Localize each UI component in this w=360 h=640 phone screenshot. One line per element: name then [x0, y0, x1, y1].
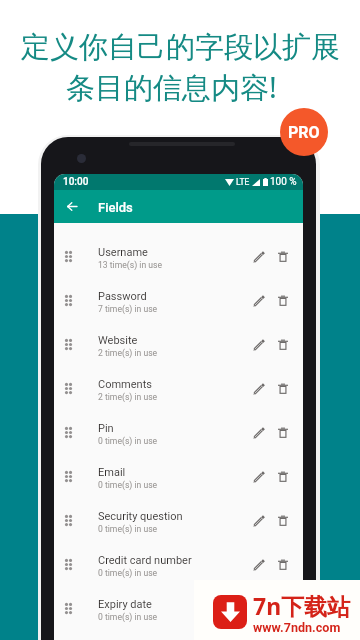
button[interactable]: Delete [271, 455, 294, 498]
staticText: 100 % [270, 176, 297, 188]
staticText: Username [98, 246, 148, 259]
button[interactable]: Security question [54, 498, 303, 542]
button[interactable]: Edit [247, 587, 271, 630]
staticText: Email [98, 466, 126, 479]
staticText: 2 time(s) in use [98, 392, 158, 402]
button[interactable]: Expiry date [54, 586, 303, 630]
button[interactable]: Edit [247, 411, 271, 454]
button[interactable]: Credit card number [54, 542, 303, 586]
staticText: Password [98, 290, 147, 303]
staticText: Comments [98, 378, 152, 391]
staticText: Security question [98, 510, 183, 523]
button[interactable]: Delete [271, 367, 294, 410]
button[interactable]: Edit [247, 279, 271, 322]
staticText: 0 time(s) in use [98, 524, 158, 534]
staticText: 0 time(s) in use [98, 612, 158, 622]
staticText: www.7ndn.com [253, 620, 341, 635]
staticText: 7 time(s) in use [98, 304, 158, 314]
staticText: 0 time(s) in use [98, 568, 158, 578]
button[interactable]: Username [54, 234, 303, 278]
button[interactable]: Comments [54, 366, 303, 410]
button[interactable]: Delete [271, 279, 294, 322]
staticText: PRO [288, 123, 320, 142]
staticText: Website [98, 334, 138, 347]
staticText: 10:00 [63, 176, 89, 188]
staticText: 13 time(s) in use [98, 260, 162, 270]
button[interactable]: Delete [271, 587, 294, 630]
staticText: Expiry date [98, 598, 152, 611]
staticText: 0 time(s) in use [98, 480, 158, 490]
button[interactable]: Delete [271, 323, 294, 366]
staticText: 2 time(s) in use [98, 348, 158, 358]
button[interactable]: Website [54, 322, 303, 366]
button[interactable]: Edit [247, 543, 271, 586]
button[interactable]: Edit [247, 235, 271, 278]
staticText: 条目的信息内容! [66, 67, 277, 107]
button[interactable]: Edit [247, 499, 271, 542]
staticText: 定义你自己的字段以扩展 [21, 29, 340, 66]
button[interactable]: Delete [271, 235, 294, 278]
button[interactable]: Edit [247, 367, 271, 410]
button[interactable]: Email [54, 454, 303, 498]
staticText: LTE [236, 177, 250, 187]
staticText: Pin [98, 422, 114, 435]
button[interactable]: PRO [280, 108, 328, 156]
button[interactable]: Password [54, 278, 303, 322]
staticText: Credit card number [98, 554, 192, 567]
staticText: 7n下载站 [253, 590, 351, 621]
button[interactable]: Delete [271, 543, 294, 586]
button[interactable]: Delete [271, 499, 294, 542]
button[interactable]: Delete [271, 411, 294, 454]
button[interactable]: Edit [247, 455, 271, 498]
staticText: 0 time(s) in use [98, 436, 158, 446]
button[interactable]: Back [58, 190, 86, 223]
button[interactable]: Edit [247, 323, 271, 366]
staticText: Fields [98, 200, 133, 215]
button[interactable]: Pin [54, 410, 303, 454]
